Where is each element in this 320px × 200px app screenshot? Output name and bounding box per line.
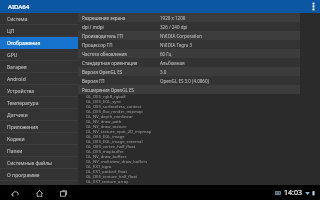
button[interactable]: GL_NV_draw_path: [78, 119, 320, 124]
button[interactable]: Android: [0, 73, 78, 85]
button[interactable]: GL_OES_EGL_sync: [78, 99, 320, 104]
button[interactable]: GL_OES_mapbuffer: [78, 149, 320, 154]
button[interactable]: GL_OES_rgb8_rgba8: [78, 94, 320, 99]
button[interactable]: Recent apps: [56, 186, 70, 200]
staticText: Отображение: [7, 40, 41, 47]
staticText: 326 / 240 dpi: [160, 24, 188, 30]
button[interactable]: Процессор ГП: [78, 40, 300, 49]
staticText: GL_OES_texture_half_float: [86, 174, 138, 179]
button[interactable]: GL_NV_depth_nonlinear: [78, 114, 320, 119]
staticText: 60 Гц: [160, 51, 172, 57]
staticText: Температура: [7, 100, 39, 107]
staticText: 14:03: [284, 188, 302, 198]
button[interactable]: Разрешение экрана: [78, 13, 300, 22]
staticText: Версия OpenGL ES: [82, 69, 160, 75]
staticText: GL_NV_draw_buffers: [86, 154, 127, 159]
staticText: GL_EXT_texture_array: [86, 179, 129, 184]
staticText: GL_EXT_packed_float: [86, 169, 127, 174]
button[interactable]: More options: [306, 0, 320, 13]
staticText: Расширения OpenGL ES: [82, 87, 135, 93]
staticText: NVIDIA Tegra 3: [160, 42, 193, 48]
staticText: GL_NV_draw_path: [86, 119, 122, 124]
staticText: dpi / mdpi: [82, 24, 160, 30]
button[interactable]: Home: [32, 186, 46, 200]
button[interactable]: GL_NV_draw_buffers: [78, 154, 320, 159]
button[interactable]: GL_OES_vertex_half_float: [78, 144, 320, 149]
staticText: Частота обновления: [82, 51, 160, 57]
button[interactable]: GL_OES_texture_half_float: [78, 174, 320, 179]
staticText: AIDA64: [8, 3, 30, 11]
button[interactable]: Отображение: [0, 37, 78, 49]
button[interactable]: Кодеки: [0, 133, 78, 145]
staticText: ЦП: [7, 28, 15, 35]
button[interactable]: Стандартная ориентация: [78, 58, 300, 67]
staticText: Системные файлы: [7, 160, 52, 167]
button[interactable]: GL_NV_texture_npot_2D_mipmap: [78, 129, 320, 134]
button[interactable]: GL_NV_draw_texture: [78, 124, 320, 129]
button[interactable]: dpi / mdpi: [78, 22, 300, 31]
button[interactable]: Папки: [0, 145, 78, 157]
staticText: Батарея: [7, 64, 27, 71]
staticText: Стандартная ориентация: [82, 60, 160, 66]
staticText: Приложения: [7, 124, 39, 131]
button[interactable]: GL_EXT_bgra: [78, 164, 320, 169]
staticText: 3.0: [160, 69, 167, 75]
staticText: GL_OES_EGL_sync: [86, 99, 122, 104]
staticText: GL_NV_depth_nonlinear: [86, 114, 134, 119]
staticText: GL_OES_EGL_image_external: [86, 139, 143, 144]
staticText: OpenGL ES 3.0 (4.0860): [160, 78, 209, 84]
staticText: Версия ГП: [82, 78, 160, 84]
button[interactable]: GL_OES_EGL_image: [78, 134, 320, 139]
staticText: NVIDIA Corporation: [160, 33, 202, 39]
button[interactable]: Приложения: [0, 121, 78, 133]
staticText: GL_EXT_bgra: [86, 164, 112, 169]
staticText: О программе: [7, 172, 40, 179]
staticText: Альбомная: [160, 60, 185, 66]
button[interactable]: GL_EXT_packed_float: [78, 169, 320, 174]
button[interactable]: GL_NV_multiview_draw_buffers: [78, 159, 320, 164]
staticText: GL_NV_multiview_draw_buffers: [86, 159, 148, 164]
button[interactable]: Версия ГП: [78, 76, 300, 85]
staticText: Производитель ГП: [82, 33, 160, 39]
staticText: Кодеки: [7, 136, 25, 143]
button[interactable]: Батарея: [0, 61, 78, 73]
staticText: Датчики: [7, 112, 28, 119]
staticText: GL_OES_vertex_half_float: [86, 144, 136, 149]
button[interactable]: GL_OES_surfaceless_context: [78, 104, 320, 109]
button[interactable]: GPU: [0, 49, 78, 61]
staticText: GL_OES_EGL_image: [86, 134, 125, 139]
button[interactable]: О программе: [0, 169, 78, 181]
staticText: GL_OES_rgb8_rgba8: [86, 94, 126, 99]
staticText: Разрешение экрана: [82, 15, 160, 21]
staticText: GL_OES_mapbuffer: [86, 149, 124, 154]
staticText: 1920 x 1200: [160, 15, 186, 21]
button[interactable]: Системные файлы: [0, 157, 78, 169]
staticText: GPU: [7, 52, 18, 59]
staticText: Папки: [7, 148, 23, 155]
staticText: GL_OES_fbo_render_mipmap: [86, 109, 143, 114]
button[interactable]: Производитель ГП: [78, 31, 300, 40]
staticText: Система: [7, 16, 28, 23]
button[interactable]: GL_OES_fbo_render_mipmap: [78, 109, 320, 114]
button[interactable]: Система: [0, 13, 78, 25]
button[interactable]: Устройства: [0, 85, 78, 97]
staticText: GL_OES_surfaceless_context: [86, 104, 142, 109]
button[interactable]: GL_EXT_texture_array: [78, 179, 320, 184]
button[interactable]: Датчики: [0, 109, 78, 121]
button[interactable]: GL_OES_EGL_image_external: [78, 139, 320, 144]
staticText: Android: [7, 76, 26, 83]
button[interactable]: Частота обновления: [78, 49, 300, 58]
button[interactable]: Температура: [0, 97, 78, 109]
button[interactable]: Back: [8, 186, 22, 200]
staticText: GL_NV_texture_npot_2D_mipmap: [86, 129, 152, 134]
button[interactable]: ЦП: [0, 25, 78, 37]
staticText: GL_NV_draw_texture: [86, 124, 127, 129]
staticText: Процессор ГП: [82, 42, 160, 48]
button[interactable]: Версия OpenGL ES: [78, 67, 300, 76]
button[interactable]: Расширения OpenGL ES: [78, 85, 300, 94]
staticText: Устройства: [7, 88, 35, 95]
